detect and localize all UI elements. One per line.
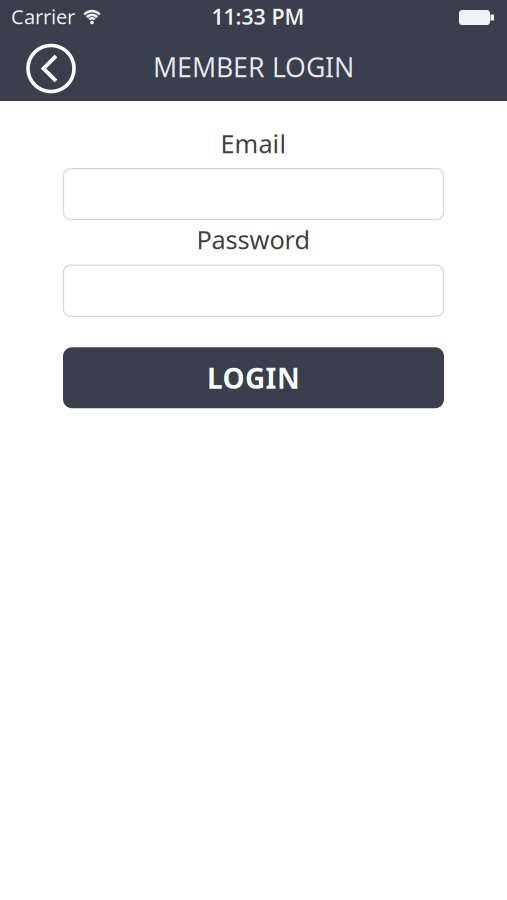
staticText: LOGIN [207, 359, 300, 396]
staticText: Carrier [11, 3, 75, 30]
staticText: Password [196, 223, 310, 256]
staticText: MEMBER LOGIN [153, 49, 354, 85]
staticText: Email [220, 126, 286, 160]
button[interactable]: LOGIN [63, 347, 444, 408]
button[interactable]: Back [26, 42, 76, 92]
staticText: 11:33 PM [211, 2, 304, 31]
button[interactable]: Email [63, 169, 443, 220]
button[interactable]: Password [63, 265, 443, 316]
